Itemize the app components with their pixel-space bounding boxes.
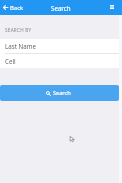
button[interactable]: Last Name xyxy=(0,39,119,53)
staticText: Search xyxy=(53,89,71,97)
button[interactable]: Menu xyxy=(106,0,122,15)
staticText: Last Name xyxy=(5,42,36,50)
button[interactable]: Cell xyxy=(0,54,119,68)
staticText: SEARCH BY xyxy=(5,27,32,33)
staticText: Search xyxy=(51,4,71,12)
button[interactable]: Search xyxy=(0,85,119,101)
staticText: Back xyxy=(10,4,24,12)
staticText: Cell xyxy=(5,57,16,65)
button[interactable]: Back xyxy=(0,0,27,15)
